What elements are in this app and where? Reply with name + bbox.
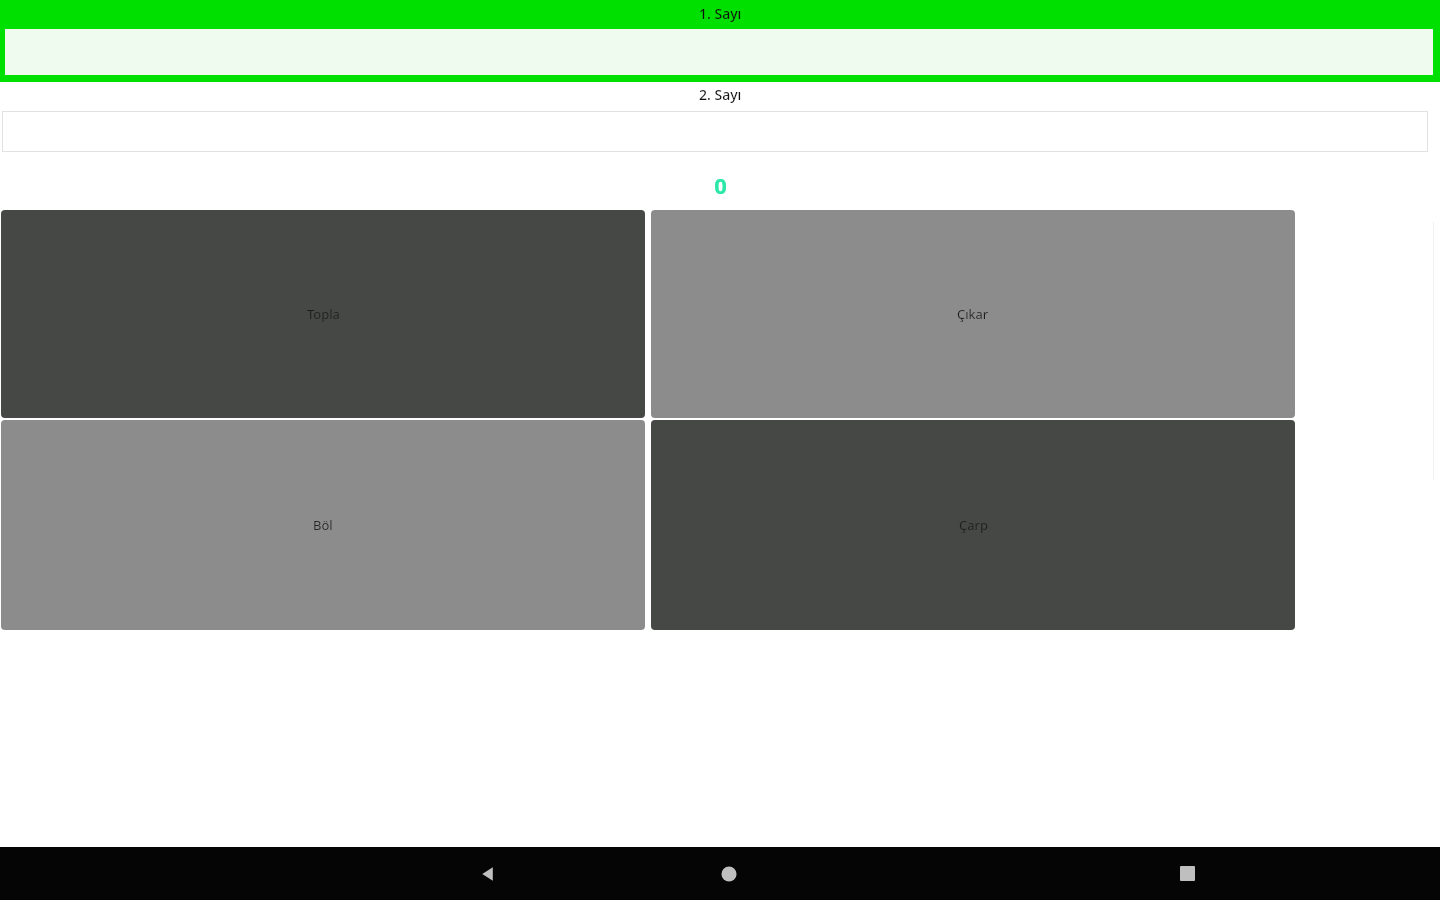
- staticText: 0: [714, 170, 727, 200]
- staticText: Böl: [313, 516, 333, 534]
- button[interactable]: Back: [0, 847, 720, 900]
- staticText: Çarp: [959, 516, 988, 534]
- button[interactable]: Recent apps: [954, 847, 1440, 900]
- staticText: Topla: [307, 305, 340, 323]
- staticText: 1. Sayı: [699, 4, 742, 23]
- staticText: 2. Sayı: [699, 85, 742, 104]
- button[interactable]: [2, 111, 1428, 152]
- staticText: Çıkar: [957, 305, 989, 323]
- button[interactable]: Home: [720, 847, 954, 900]
